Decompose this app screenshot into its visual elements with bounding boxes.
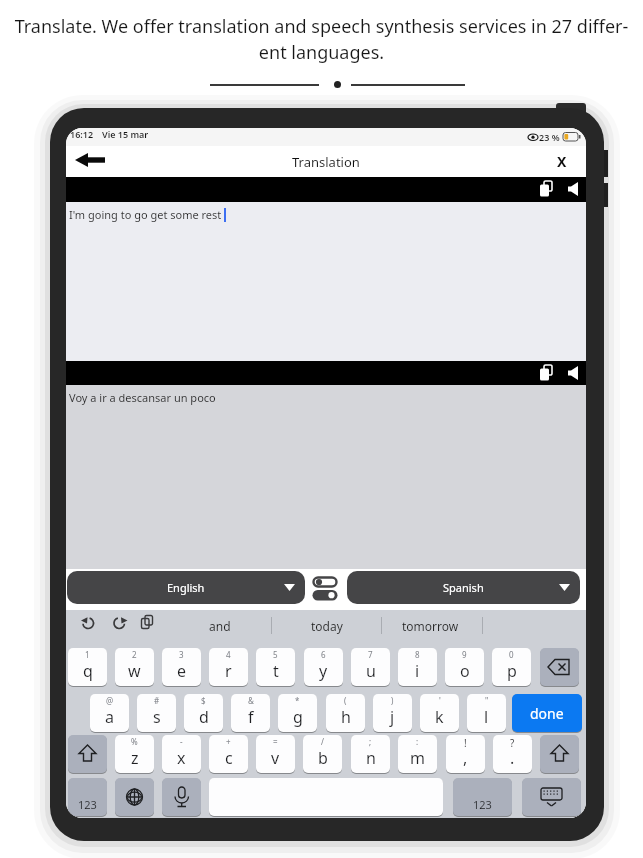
button[interactable]: I'm going to go get some rest <box>66 202 586 361</box>
button[interactable]: * <box>278 694 317 732</box>
button[interactable]: 5 <box>256 648 295 686</box>
staticText: 6 <box>321 649 326 660</box>
staticText: " <box>485 695 489 706</box>
staticText: e <box>177 660 187 682</box>
button[interactable]: ( <box>326 694 365 732</box>
button[interactable]: English <box>67 571 305 604</box>
button[interactable]: & <box>231 694 270 732</box>
button[interactable]: and <box>169 612 270 640</box>
button[interactable]: : <box>398 735 437 773</box>
staticText: Spanish <box>443 580 484 595</box>
staticText: u <box>366 660 376 682</box>
button[interactable]: Spanish <box>347 571 580 604</box>
button[interactable] <box>540 735 579 773</box>
button[interactable]: = <box>256 735 295 773</box>
button[interactable]: " <box>467 694 506 732</box>
button[interactable]: @ <box>90 694 129 732</box>
staticText: : <box>416 736 419 747</box>
button[interactable] <box>70 612 170 638</box>
staticText: & <box>248 695 254 706</box>
button[interactable] <box>536 180 558 198</box>
button[interactable]: / <box>303 735 342 773</box>
button[interactable] <box>66 361 586 385</box>
staticText: English <box>167 580 205 595</box>
button[interactable] <box>540 648 579 686</box>
button[interactable]: tomorrow <box>380 612 480 640</box>
button[interactable]: % <box>115 735 154 773</box>
button[interactable]: 3 <box>162 648 201 686</box>
staticText: o <box>460 660 470 682</box>
button[interactable]: 123 <box>68 778 107 816</box>
staticText: $ <box>201 695 206 706</box>
button[interactable] <box>66 146 122 177</box>
staticText: ! <box>464 736 467 750</box>
button[interactable]: 9 <box>445 648 484 686</box>
staticText: 23 % <box>539 131 560 143</box>
staticText: + <box>226 736 231 747</box>
staticText: f <box>248 706 254 728</box>
staticText: - <box>180 736 183 747</box>
button[interactable]: 4 <box>209 648 248 686</box>
button[interactable] <box>68 735 107 773</box>
staticText: = <box>273 736 278 747</box>
button[interactable] <box>564 181 582 197</box>
staticText: t <box>273 660 279 682</box>
staticText: % <box>131 736 138 747</box>
staticText: r <box>225 660 232 682</box>
button[interactable] <box>66 177 586 202</box>
staticText: s <box>153 706 161 728</box>
button[interactable] <box>522 778 581 816</box>
staticText: 4 <box>226 649 231 660</box>
button[interactable] <box>162 778 201 816</box>
button[interactable] <box>115 778 154 816</box>
staticText: * <box>295 695 300 706</box>
button[interactable]: today <box>277 612 377 640</box>
staticText: 9 <box>462 649 467 660</box>
staticText: Vie 15 mar <box>102 128 149 140</box>
button[interactable] <box>536 364 558 382</box>
staticText: y <box>319 660 328 682</box>
button[interactable]: ? <box>493 735 532 773</box>
button[interactable]: 8 <box>398 648 437 686</box>
staticText: done <box>530 704 564 723</box>
button[interactable]: 0 <box>492 648 531 686</box>
staticText: 1 <box>85 649 90 660</box>
button[interactable]: 7 <box>351 648 390 686</box>
button[interactable] <box>512 694 582 732</box>
staticText: p <box>507 660 517 682</box>
staticText: today <box>311 618 343 634</box>
staticText: i <box>415 660 420 682</box>
staticText: v <box>271 747 280 769</box>
button[interactable] <box>209 778 443 816</box>
button[interactable] <box>564 365 582 381</box>
staticText: ( <box>344 695 347 706</box>
staticText: g <box>293 706 303 728</box>
staticText: d <box>199 706 209 728</box>
staticText: 3 <box>179 649 184 660</box>
button[interactable]: $ <box>184 694 223 732</box>
staticText: ' <box>439 695 441 706</box>
staticText: 7 <box>368 649 373 660</box>
staticText: , <box>463 747 468 769</box>
button[interactable]: ) <box>373 694 412 732</box>
button[interactable]: - <box>162 735 201 773</box>
staticText: l <box>484 706 489 728</box>
button[interactable]: ! <box>446 735 485 773</box>
staticText: / <box>321 736 324 747</box>
button[interactable]: 1 <box>68 648 107 686</box>
staticText: tomorrow <box>402 618 459 634</box>
button[interactable]: 123 <box>453 778 512 816</box>
button[interactable] <box>312 576 338 601</box>
staticText: z <box>131 747 139 769</box>
button[interactable]: ; <box>351 735 390 773</box>
button[interactable]: X <box>534 146 586 177</box>
button[interactable]: Voy a ir a descansar un poco <box>66 385 586 569</box>
button[interactable]: ' <box>420 694 459 732</box>
button[interactable]: 6 <box>304 648 343 686</box>
staticText: 0 <box>509 649 514 660</box>
staticText: ; <box>369 736 372 747</box>
staticText: . <box>510 747 515 769</box>
button[interactable]: # <box>137 694 176 732</box>
button[interactable]: 2 <box>115 648 154 686</box>
button[interactable]: + <box>209 735 248 773</box>
